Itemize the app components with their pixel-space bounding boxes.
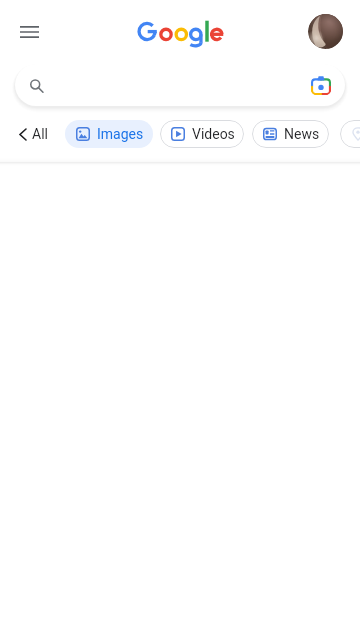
button[interactable]: Videos: [160, 120, 244, 148]
button[interactable]: All: [0, 120, 54, 148]
button[interactable]: Maps: [340, 120, 360, 148]
button[interactable]: News: [252, 120, 329, 148]
button[interactable]: Account: [308, 14, 343, 49]
button[interactable]: Images: [65, 120, 153, 148]
button[interactable]: Menu: [12, 14, 47, 49]
staticText: Videos: [192, 126, 235, 142]
button[interactable]: Search by image: [309, 73, 333, 97]
staticText: News: [284, 126, 320, 142]
staticText: All: [32, 126, 48, 142]
staticText: Images: [97, 126, 144, 142]
button[interactable]: Search by image: [15, 64, 345, 106]
